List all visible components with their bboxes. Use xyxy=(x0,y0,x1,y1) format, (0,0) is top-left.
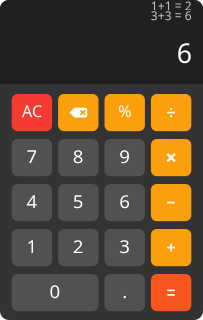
button[interactable]: 7 xyxy=(12,139,52,176)
button[interactable]: 9 xyxy=(104,139,145,176)
staticText: 9 xyxy=(119,144,130,168)
button[interactable]: 6 xyxy=(104,184,145,221)
staticText: AC xyxy=(22,100,42,122)
staticText: 8 xyxy=(73,144,84,168)
staticText: 4 xyxy=(26,189,37,213)
button[interactable]: 1 xyxy=(12,229,52,266)
button[interactable]: Divide xyxy=(151,94,191,131)
staticText: 1 xyxy=(26,234,37,258)
button[interactable]: Delete xyxy=(58,94,98,131)
button[interactable]: 0 xyxy=(12,274,98,311)
button[interactable]: Minus xyxy=(151,184,191,221)
staticText: 2 xyxy=(73,234,84,258)
button[interactable]: Multiply xyxy=(151,139,191,176)
button[interactable]: . xyxy=(104,274,145,311)
button[interactable]: 2 xyxy=(58,229,98,266)
button[interactable]: Equals xyxy=(151,274,191,311)
button[interactable]: AC xyxy=(12,94,52,131)
staticText: 3 xyxy=(119,234,130,258)
staticText: 6 xyxy=(177,35,192,70)
button[interactable]: Plus xyxy=(151,229,191,266)
button[interactable]: 4 xyxy=(12,184,52,221)
button[interactable]: 5 xyxy=(58,184,98,221)
staticText: 7 xyxy=(26,144,37,168)
staticText: 1+1 = 2 xyxy=(151,0,192,14)
staticText: 6 xyxy=(119,189,130,213)
staticText: 0 xyxy=(50,279,61,303)
button[interactable]: 3 xyxy=(104,229,145,266)
staticText: 5 xyxy=(73,189,84,213)
staticText: . xyxy=(122,279,127,303)
staticText: % xyxy=(118,100,131,122)
staticText: 3+3 = 6 xyxy=(151,8,192,23)
button[interactable]: % xyxy=(104,94,145,131)
button[interactable]: 8 xyxy=(58,139,98,176)
